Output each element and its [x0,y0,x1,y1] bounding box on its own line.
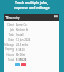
button[interactable]: Job [4,27,59,32]
staticText: 12 Jun 2024 [16,38,31,42]
staticText: 9:41 [5,15,10,18]
staticText: Client [4,23,14,27]
staticText: 8h 00m [16,53,26,57]
staticText: Track multiple jobs, [15,0,49,5]
staticText: ▮▮▮ [54,15,58,18]
staticText: Kitchen fit [16,28,29,32]
button[interactable]: Date [4,37,59,42]
button[interactable]: Expense [4,47,59,52]
staticText: Install [16,33,24,37]
button[interactable]: Hours [4,52,59,57]
button[interactable]: Save [15,63,20,66]
button[interactable]: Mileage [4,42,59,47]
staticText: Total [4,58,14,62]
staticText: New entry [6,16,20,20]
staticText: Mileage [4,43,14,47]
staticText: Acme Co. [16,23,28,27]
staticText: $ 398.20 [16,58,27,62]
button[interactable]: Task [4,32,59,37]
button[interactable]: Client [4,22,59,27]
staticText: Task [4,33,14,37]
staticText: Hours [4,53,14,57]
staticText: $ 38.20 [16,48,25,52]
button[interactable]: Delete [21,63,26,66]
staticText: expense and mileage [14,5,50,10]
staticText: Expense [4,47,14,52]
button[interactable]: Total [4,57,59,62]
staticText: Date [4,38,14,42]
staticText: Job [4,28,14,32]
staticText: 24.5 miles [16,43,29,47]
